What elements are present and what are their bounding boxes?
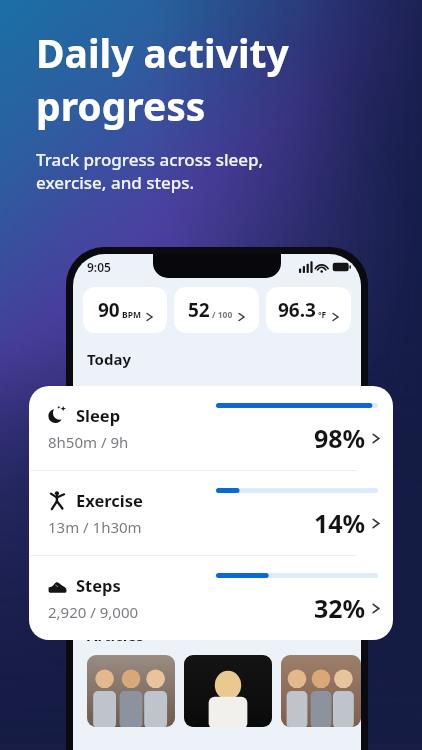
- button[interactable]: 90: [83, 287, 167, 333]
- staticText: 2,920 / 9,000: [48, 602, 139, 622]
- staticText: Daily activity: [36, 26, 289, 79]
- button[interactable]: 52: [174, 287, 259, 333]
- button[interactable]: 96.3: [266, 287, 351, 333]
- button[interactable]: Sleep: [29, 386, 393, 470]
- staticText: BPM: [122, 309, 141, 321]
- button[interactable]: Exercise: [29, 471, 393, 555]
- staticText: Steps: [76, 574, 121, 596]
- staticText: Today: [87, 349, 132, 369]
- staticText: / 100: [212, 309, 233, 321]
- staticText: Exercise: [76, 489, 143, 511]
- staticText: 52: [188, 297, 210, 323]
- staticText: progress: [36, 79, 206, 132]
- staticText: °F: [318, 309, 327, 321]
- staticText: 96.3: [278, 297, 316, 323]
- staticText: 14%: [314, 506, 366, 540]
- button[interactable]: Article: [281, 655, 361, 727]
- staticText: 13m / 1h30m: [48, 517, 142, 537]
- staticText: Track progress across sleep,: [36, 148, 264, 171]
- button[interactable]: Article: [87, 655, 175, 727]
- staticText: Articles: [87, 625, 144, 645]
- staticText: Sleep: [76, 404, 121, 426]
- staticText: 32%: [314, 591, 366, 625]
- staticText: 8h50m / 9h: [48, 432, 129, 452]
- staticText: 90: [98, 297, 120, 323]
- staticText: 98%: [314, 421, 366, 455]
- staticText: exercise, and steps.: [36, 171, 195, 194]
- staticText: 9:05: [87, 259, 111, 275]
- button[interactable]: Article: [184, 655, 272, 727]
- button[interactable]: Steps: [29, 556, 393, 640]
